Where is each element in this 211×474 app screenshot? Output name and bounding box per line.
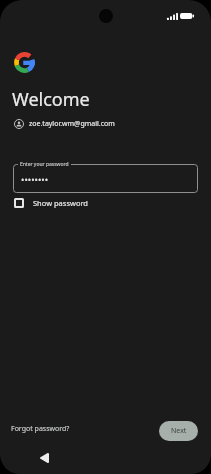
staticText: Welcome — [12, 87, 90, 112]
staticText: Show password — [33, 198, 88, 208]
staticText: zoe.taylor.wm@gmail.com — [29, 119, 115, 129]
button[interactable]: Show password — [10, 194, 94, 212]
staticText: Enter your password — [20, 161, 69, 168]
button[interactable]: Back — [31, 445, 57, 471]
button[interactable]: Next — [159, 421, 198, 441]
staticText: Forgot password? — [11, 424, 70, 434]
staticText: Next — [171, 426, 187, 436]
button[interactable]: •••••••• — [13, 164, 198, 193]
button[interactable]: Forgot password? — [7, 420, 74, 438]
button[interactable]: zoe.taylor.wm@gmail.com — [12, 117, 117, 131]
staticText: •••••••• — [21, 173, 49, 185]
